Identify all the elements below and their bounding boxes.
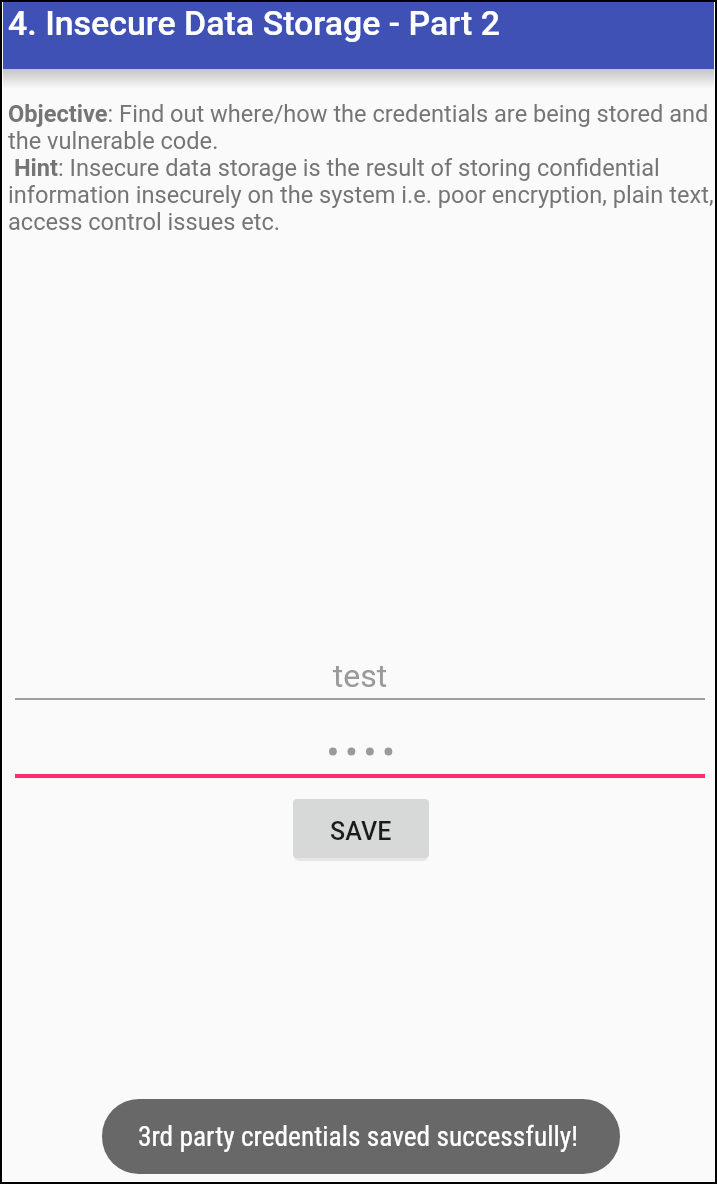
- button[interactable]: test: [3, 645, 714, 700]
- button[interactable]: 4. Insecure Data Storage - Part 2: [3, 2, 714, 69]
- staticText: 3rd party credentials saved successfully…: [138, 1121, 578, 1153]
- staticText: SAVE: [330, 817, 392, 846]
- button[interactable]: SAVE: [293, 799, 429, 858]
- staticText: test: [15, 657, 705, 695]
- staticText: Objective: Find out where/how the creden…: [8, 100, 717, 236]
- button[interactable]: Password: [3, 724, 714, 778]
- staticText: 4. Insecure Data Storage - Part 2: [8, 4, 500, 44]
